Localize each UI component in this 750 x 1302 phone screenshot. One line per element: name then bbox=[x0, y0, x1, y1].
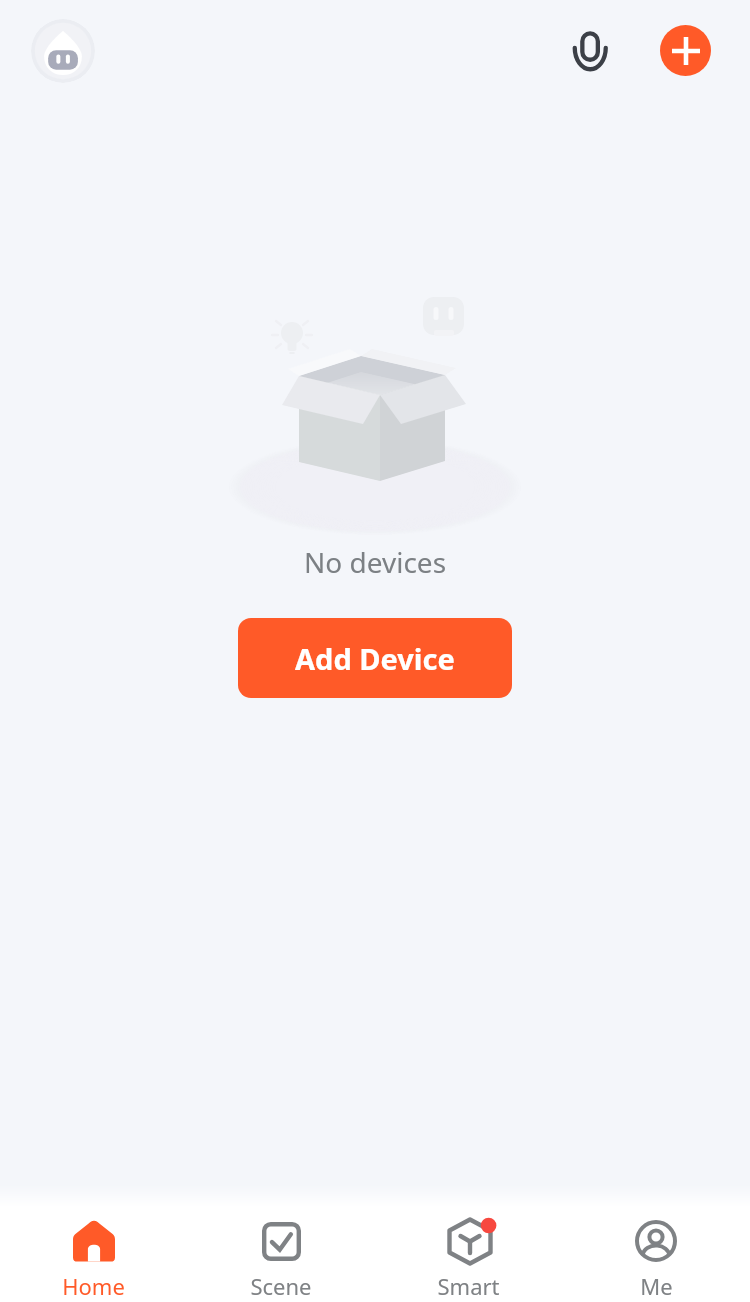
staticText: Scene bbox=[250, 1271, 312, 1301]
button[interactable]: Home profile bbox=[31, 19, 95, 83]
staticText: Smart bbox=[437, 1271, 500, 1301]
button[interactable]: Home bbox=[0, 1207, 187, 1301]
staticText: Add Device bbox=[295, 639, 455, 678]
button[interactable]: Smart bbox=[374, 1207, 562, 1301]
button[interactable]: Add Device bbox=[238, 618, 512, 698]
button[interactable]: Me bbox=[562, 1207, 750, 1301]
staticText: No devices bbox=[304, 543, 447, 581]
staticText: Me bbox=[640, 1271, 673, 1301]
staticText: Home bbox=[62, 1271, 125, 1301]
button[interactable]: Scene bbox=[187, 1207, 374, 1301]
button[interactable]: Add device bbox=[660, 25, 711, 76]
button[interactable]: Voice search bbox=[562, 23, 618, 79]
